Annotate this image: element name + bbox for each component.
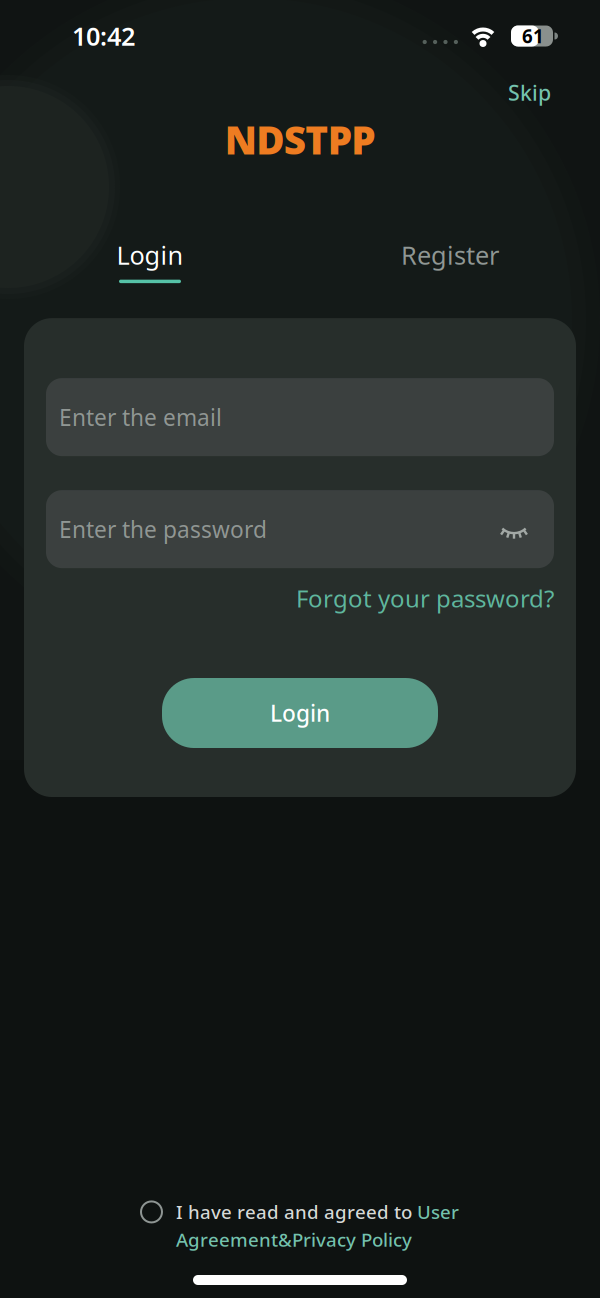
- staticText: Register: [401, 238, 499, 272]
- staticText: I have read and agreed to: [176, 1199, 417, 1224]
- button[interactable]: Forgot your password?: [296, 582, 554, 614]
- staticText: User: [417, 1199, 459, 1224]
- staticText: Skip: [508, 78, 551, 107]
- button[interactable]: Register: [300, 238, 600, 283]
- button[interactable]: Skip: [508, 78, 551, 107]
- button[interactable]: Agree to terms: [141, 1201, 162, 1222]
- button[interactable]: I have read and agreed to: [176, 1199, 459, 1252]
- staticText: Enter the email: [59, 402, 222, 432]
- staticText: Forgot your password?: [296, 582, 554, 614]
- staticText: Login: [270, 698, 330, 728]
- button[interactable]: Login: [0, 238, 300, 283]
- button[interactable]: Show password: [499, 517, 529, 541]
- staticText: NDSTPP: [225, 114, 375, 165]
- staticText: Enter the password: [59, 514, 267, 544]
- staticText: 10:42: [72, 19, 135, 53]
- staticText: Agreement&Privacy Policy: [176, 1227, 412, 1252]
- staticText: 61: [522, 24, 544, 48]
- staticText: Login: [116, 238, 183, 272]
- button[interactable]: Login: [162, 678, 438, 748]
